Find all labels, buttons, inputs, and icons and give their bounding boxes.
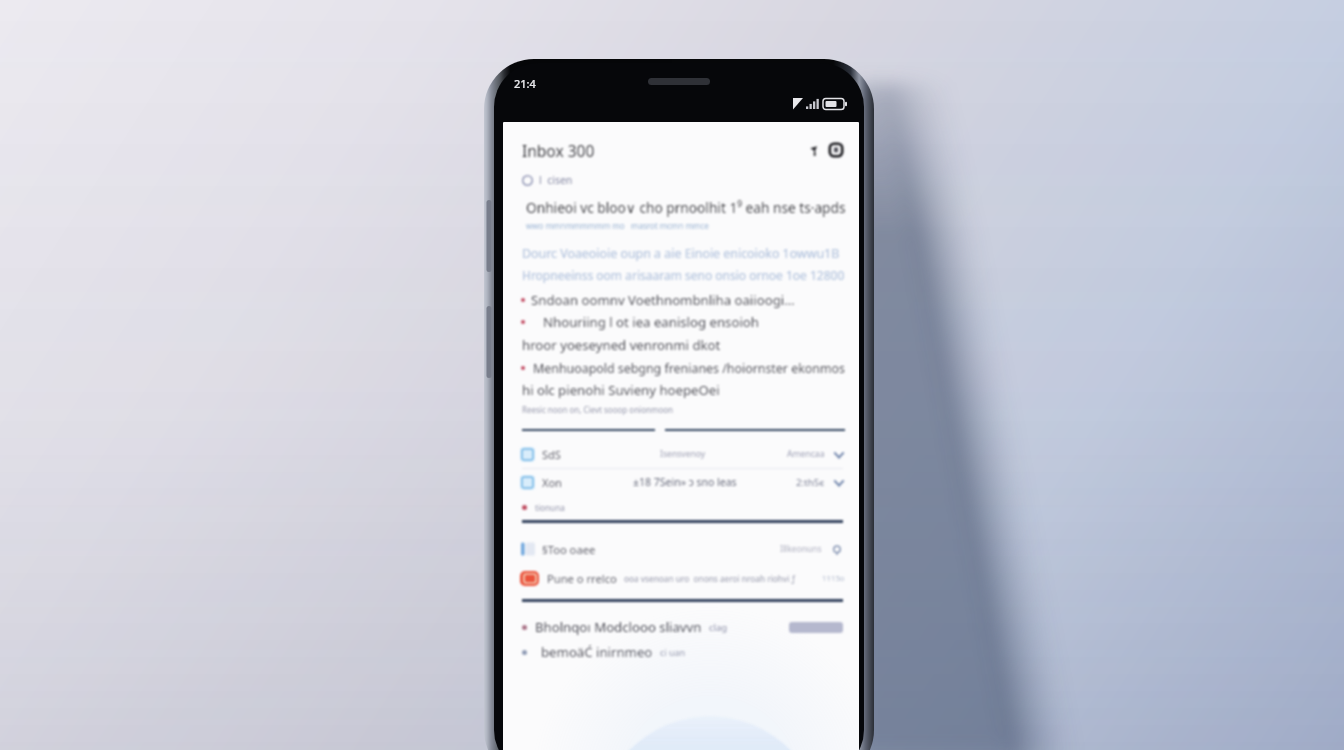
staticText: hroor yoeseyned venronmi dkot xyxy=(522,336,721,354)
button[interactable]: Nhouriing l ot iea eanislog ensoioh xyxy=(521,312,849,332)
staticText: Pune o rrelco xyxy=(547,571,617,586)
button[interactable]: Xon xyxy=(520,468,845,496)
button[interactable]: hi olc pienohi Suvieny hoepeOei xyxy=(521,380,849,400)
button[interactable]: Archive xyxy=(827,141,845,159)
staticText: tionuna xyxy=(535,502,565,513)
staticText: SdS xyxy=(542,447,561,462)
button[interactable]: Filter xyxy=(805,141,823,159)
staticText: §Too oaee xyxy=(542,542,596,557)
button[interactable]: Bholnqoı Modclooo sliavvn xyxy=(522,616,843,638)
button[interactable]: More xyxy=(830,543,843,556)
staticText: Amencaa xyxy=(787,448,825,460)
staticText: Onhieoi vc bloo∨ cho prnoolhit 1⁹ eah ns… xyxy=(526,198,846,217)
button[interactable]: hroor yoeseyned venronmi dkot xyxy=(521,335,849,355)
staticText: 21:4 xyxy=(514,76,536,91)
staticText: Reesic noon on, Cievt sooop onionmoon xyxy=(522,404,674,415)
staticText: l cisen xyxy=(539,173,573,187)
staticText: Inbox 300 xyxy=(522,140,595,161)
staticText: Xon xyxy=(542,475,562,490)
staticText: ±18 7Sein» ɔ sno leas xyxy=(633,475,737,489)
staticText: Hropneeinss oom arisaaram seno onsio orn… xyxy=(522,267,845,283)
staticText: Dourc Voaeoioie oupn a aie Einoie enicoi… xyxy=(522,245,840,262)
staticText: Bholnqoı Modclooo sliavvn xyxy=(535,618,702,636)
button[interactable]: Menhuoapold sebgng frenianes /hoiornster… xyxy=(521,358,849,378)
button[interactable]: Expand xyxy=(832,448,845,461)
staticText: Isensvenoy xyxy=(660,448,706,460)
button[interactable]: Label tag xyxy=(789,622,843,633)
button[interactable]: Sndoan oomnv Voethnombnliha oaiioogi… xyxy=(521,290,849,310)
button[interactable]: Pune o rrelco xyxy=(520,565,845,591)
staticText: Sndoan oomnv Voethnombnliha oaiioogi… xyxy=(531,291,795,309)
staticText: Nhouriing l ot iea eanislog ensoioh xyxy=(543,313,759,331)
button[interactable]: SdS xyxy=(520,440,845,468)
button[interactable]: §Too oaee xyxy=(521,537,843,561)
staticText: clag xyxy=(709,621,728,634)
staticText: 1115o xyxy=(822,573,845,584)
staticText: wwo mmnmmmmmm mo masrot mcmn mmce xyxy=(526,220,709,231)
staticText: ooa vsenoan uro onons aeroi nroah riohvi… xyxy=(624,573,795,584)
staticText: Illkeonuns xyxy=(780,543,822,555)
button[interactable]: bemoäĆ inirnmeo xyxy=(522,641,859,663)
button[interactable]: Expand xyxy=(832,476,845,489)
staticText: bemoäĆ inirnmeo xyxy=(541,643,653,661)
staticText: hi olc pienohi Suvieny hoepeOei xyxy=(522,381,720,399)
staticText: ci uan xyxy=(660,646,686,658)
staticText: 2:th5є xyxy=(796,476,825,489)
staticText: Menhuoapold sebgng frenianes /hoiornster… xyxy=(533,360,849,377)
